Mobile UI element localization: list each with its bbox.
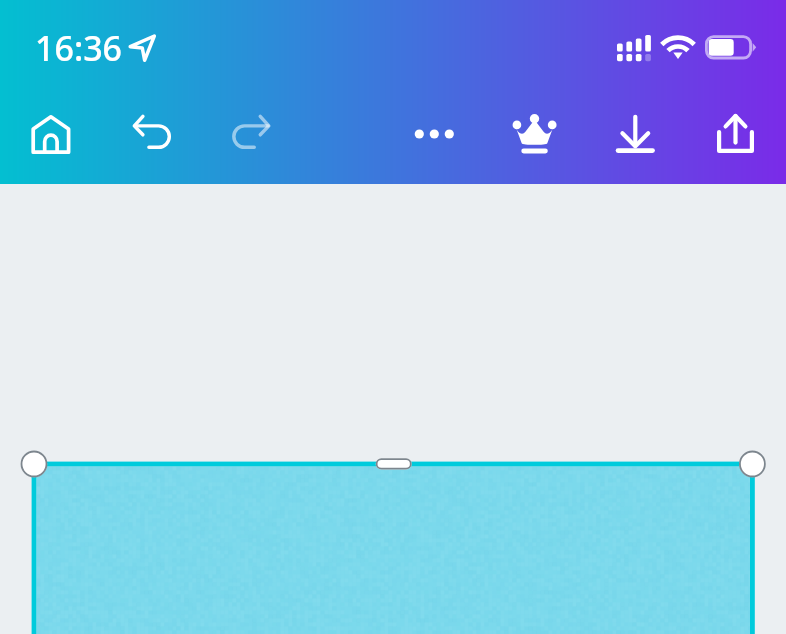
- button[interactable]: Download: [607, 106, 663, 162]
- staticText: 16:36: [35, 25, 123, 71]
- button[interactable]: More options: [406, 106, 462, 162]
- button[interactable]: Undo: [125, 106, 181, 162]
- button[interactable]: Premium: [506, 106, 562, 162]
- button[interactable]: Home: [23, 106, 79, 162]
- button[interactable]: Share: [708, 106, 764, 162]
- button[interactable]: Selected image: [32, 462, 755, 634]
- button[interactable]: Redo: [222, 106, 278, 162]
